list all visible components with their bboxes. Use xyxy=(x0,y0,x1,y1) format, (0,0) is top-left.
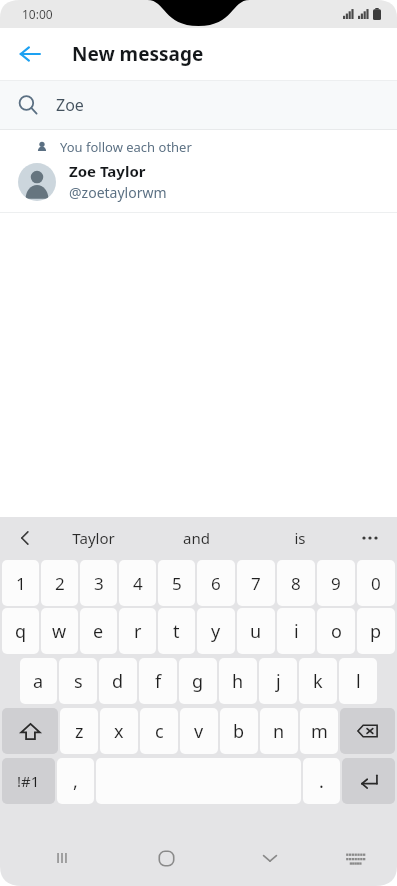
staticText: l xyxy=(356,669,361,694)
staticText: . xyxy=(319,769,324,794)
staticText: i xyxy=(294,619,299,644)
staticText: 9 xyxy=(331,572,341,595)
button[interactable]: i xyxy=(277,608,315,654)
staticText: v xyxy=(194,719,204,744)
button[interactable]: l xyxy=(339,658,377,704)
button[interactable]: , xyxy=(57,758,94,804)
staticText: c xyxy=(155,719,164,744)
staticText: , xyxy=(73,769,78,794)
staticText: j xyxy=(276,669,281,694)
button[interactable]: is xyxy=(248,517,351,558)
staticText: w xyxy=(52,619,67,644)
staticText: p xyxy=(370,619,382,644)
staticText: !#1 xyxy=(17,771,40,791)
staticText: t xyxy=(173,619,180,644)
button[interactable]: x xyxy=(100,708,138,754)
button[interactable]: You follow each other xyxy=(0,130,397,213)
staticText: Zoe xyxy=(56,94,84,116)
button[interactable]: 1 xyxy=(2,560,39,606)
staticText: Zoe Taylor xyxy=(69,161,146,181)
staticText: is xyxy=(294,528,306,548)
staticText: z xyxy=(75,719,84,744)
staticText: y xyxy=(211,619,221,644)
button[interactable]: h xyxy=(219,658,257,704)
button[interactable]: Recents xyxy=(10,830,114,886)
staticText: 5 xyxy=(172,572,182,595)
staticText: Taylor xyxy=(72,528,115,548)
button[interactable]: 3 xyxy=(80,560,117,606)
button[interactable]: g xyxy=(179,658,217,704)
button[interactable]: 0 xyxy=(357,560,395,606)
button[interactable]: j xyxy=(259,658,297,704)
staticText: d xyxy=(112,669,124,694)
button[interactable]: t xyxy=(158,608,195,654)
button[interactable]: a xyxy=(20,658,57,704)
button[interactable]: !#1 xyxy=(2,758,55,804)
button[interactable]: b xyxy=(220,708,258,754)
button[interactable]: m xyxy=(300,708,338,754)
button[interactable]: d xyxy=(99,658,137,704)
button[interactable]: . xyxy=(303,758,340,804)
staticText: h xyxy=(232,669,244,694)
button[interactable]: n xyxy=(260,708,298,754)
button[interactable]: z xyxy=(60,708,98,754)
button[interactable]: Change keyboard xyxy=(322,830,387,886)
staticText: 1 xyxy=(16,572,26,595)
staticText: 3 xyxy=(94,572,104,595)
staticText: 2 xyxy=(55,572,65,595)
staticText: a xyxy=(33,669,44,694)
button[interactable]: p xyxy=(357,608,395,654)
button[interactable]: v xyxy=(180,708,218,754)
staticText: x xyxy=(114,719,124,744)
staticText: 6 xyxy=(211,572,221,595)
staticText: f xyxy=(155,669,162,694)
button[interactable]: Home xyxy=(114,830,218,886)
button[interactable]: More options xyxy=(353,521,387,555)
button[interactable]: u xyxy=(237,608,275,654)
staticText: New message xyxy=(72,41,204,67)
staticText: and xyxy=(183,528,210,548)
staticText: m xyxy=(311,719,328,744)
button[interactable]: Zoe xyxy=(0,81,397,129)
staticText: g xyxy=(192,669,204,694)
staticText: 7 xyxy=(251,572,261,595)
button[interactable]: c xyxy=(140,708,178,754)
button[interactable]: Backspace xyxy=(340,708,395,754)
button[interactable]: 2 xyxy=(41,560,78,606)
staticText: r xyxy=(134,619,142,644)
staticText: u xyxy=(250,619,262,644)
staticText: q xyxy=(15,619,27,644)
staticText: n xyxy=(273,719,285,744)
button[interactable]: y xyxy=(197,608,235,654)
button[interactable]: 4 xyxy=(119,560,156,606)
button[interactable]: Taylor xyxy=(42,517,145,558)
button[interactable]: q xyxy=(2,608,39,654)
staticText: 0 xyxy=(371,572,381,595)
button[interactable]: Enter xyxy=(342,758,395,804)
button[interactable]: 6 xyxy=(197,560,235,606)
button[interactable]: Previous suggestions xyxy=(8,521,42,555)
staticText: b xyxy=(233,719,245,744)
staticText: 4 xyxy=(133,572,143,595)
button[interactable]: and xyxy=(145,517,248,558)
button[interactable]: Back xyxy=(8,32,52,76)
staticText: e xyxy=(93,619,104,644)
button[interactable]: 9 xyxy=(317,560,355,606)
button[interactable]: 8 xyxy=(277,560,315,606)
button[interactable]: Shift xyxy=(2,708,58,754)
button[interactable]: r xyxy=(119,608,156,654)
staticText: 10:00 xyxy=(22,6,53,22)
staticText: s xyxy=(74,669,83,694)
button[interactable]: 5 xyxy=(158,560,195,606)
button[interactable]: 7 xyxy=(237,560,275,606)
button[interactable]: o xyxy=(317,608,355,654)
staticText: k xyxy=(313,669,323,694)
button[interactable]: f xyxy=(139,658,177,704)
button[interactable]: Hide keyboard xyxy=(218,830,322,886)
button[interactable]: w xyxy=(41,608,78,654)
staticText: @zoetaylorwm xyxy=(69,183,167,202)
button[interactable]: s xyxy=(59,658,97,704)
button[interactable]: e xyxy=(80,608,117,654)
button[interactable]: k xyxy=(299,658,337,704)
